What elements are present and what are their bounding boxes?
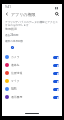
staticText: 通話履歴 [11, 95, 23, 99]
button[interactable]: Search [54, 11, 60, 17]
button[interactable]: 通話履歴 [2, 93, 62, 101]
staticText: ▮▮ [55, 6, 59, 9]
staticText: SMS [11, 87, 17, 91]
button[interactable]: 連絡先 [2, 61, 62, 69]
button[interactable]: カメラ [2, 53, 62, 61]
staticText: 9:41 [5, 5, 11, 9]
staticText: 過去24時間 [5, 33, 19, 37]
button[interactable]: SMS [2, 85, 62, 93]
staticText: アプリの権限 [11, 12, 36, 17]
staticText: 連絡先 [11, 63, 20, 67]
staticText: マイク [11, 79, 20, 83]
button[interactable]: Back [4, 11, 10, 17]
staticText: 位置情報 [11, 71, 23, 75]
button[interactable]: マイク [2, 77, 62, 85]
staticText: 権限の使用回数 [5, 39, 24, 42]
staticText: 使用状況 [5, 27, 17, 31]
staticText: カメラ [11, 55, 20, 59]
button[interactable]: 位置情報 [2, 69, 62, 77]
staticText: アプリがデバイスのデータや機能にアクセスするのを許可します [5, 20, 59, 26]
